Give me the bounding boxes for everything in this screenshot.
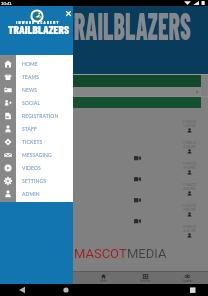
staticText: SETTINGS	[22, 178, 46, 184]
staticText: 4:30 PM	[183, 187, 196, 191]
button[interactable]: SOCIAL	[0, 96, 73, 109]
staticText: 4:30 PM	[183, 229, 196, 233]
button[interactable]: 11/04/22	[0, 120, 208, 141]
staticText: ADMIN	[22, 191, 40, 197]
button[interactable]: 11/09/22	[0, 204, 208, 225]
staticText: NEWS	[22, 87, 37, 93]
staticText: VIDEOS	[22, 165, 41, 171]
button[interactable]: SETTINGS	[0, 174, 73, 187]
button[interactable]: REGISTRATION	[0, 109, 73, 122]
button[interactable]: 11/08/22	[0, 183, 208, 204]
staticText: 11/05/22	[182, 162, 197, 166]
button[interactable]: Schedule	[124, 272, 166, 284]
button[interactable]: HOME	[0, 57, 73, 70]
button[interactable]: TICKETS	[0, 135, 73, 148]
staticText: MASCOT	[74, 246, 127, 261]
button[interactable]: 11/09/22	[0, 225, 208, 246]
staticText: REGISTRATION	[22, 113, 59, 119]
staticText: 7:00 PM	[183, 208, 196, 212]
staticText: STAFF	[22, 126, 37, 132]
button[interactable]: Teams	[41, 272, 82, 284]
staticText: MEDIA	[127, 246, 167, 261]
staticText: 11/04/22	[182, 141, 197, 145]
staticText: 11/08/22	[182, 183, 197, 187]
button[interactable]: NEWS	[0, 83, 73, 96]
staticText: TRAILBLAZERS	[8, 23, 70, 37]
button[interactable]: 11/05/22	[0, 162, 208, 183]
button[interactable]: 11/04/22	[0, 141, 208, 162]
staticText: SOCIAL	[22, 100, 41, 106]
staticText: Schedule	[140, 280, 151, 283]
staticText: 10:41	[1, 1, 12, 6]
button[interactable]: Favorites	[166, 272, 208, 284]
staticText: 1:00 PM	[183, 124, 196, 128]
staticText: 11/09/22	[182, 225, 197, 229]
button[interactable]: Home	[82, 272, 124, 284]
staticText: Upcoming Events	[12, 101, 41, 105]
staticText: Favorites	[182, 280, 193, 283]
button[interactable]: STAFF	[0, 122, 73, 135]
staticText: TICKETS	[22, 139, 43, 145]
staticText: Important Announcements	[5, 79, 49, 83]
button[interactable]: VIDEOS	[0, 161, 73, 174]
staticText: 11/09/22	[182, 204, 197, 208]
button[interactable]: With Alerts, Announcements, and Forms	[0, 87, 201, 96]
staticText: 4:15 PM	[183, 166, 196, 170]
staticText: TRAILBLAZERS	[62, 3, 191, 48]
staticText: With Alerts, Announcements, and Forms	[5, 90, 64, 94]
staticText: MESSAGING	[22, 152, 52, 158]
button[interactable]: Upcoming Events	[0, 97, 201, 108]
button[interactable]: ADMIN	[0, 187, 73, 200]
staticText: TEAMS	[22, 74, 40, 80]
staticText: 11/04/22	[182, 120, 197, 124]
staticText: Home	[100, 280, 107, 283]
staticText: 4:00 PM	[183, 145, 196, 149]
staticText: HOME	[22, 61, 38, 67]
button[interactable]: MESSAGING	[0, 148, 73, 161]
button[interactable]: Close navigation drawer	[64, 9, 73, 18]
staticText: INWOOD ACADEMY	[16, 20, 60, 25]
button[interactable]: TEAMS	[0, 70, 73, 83]
button[interactable]: Important Announcements	[0, 75, 201, 87]
